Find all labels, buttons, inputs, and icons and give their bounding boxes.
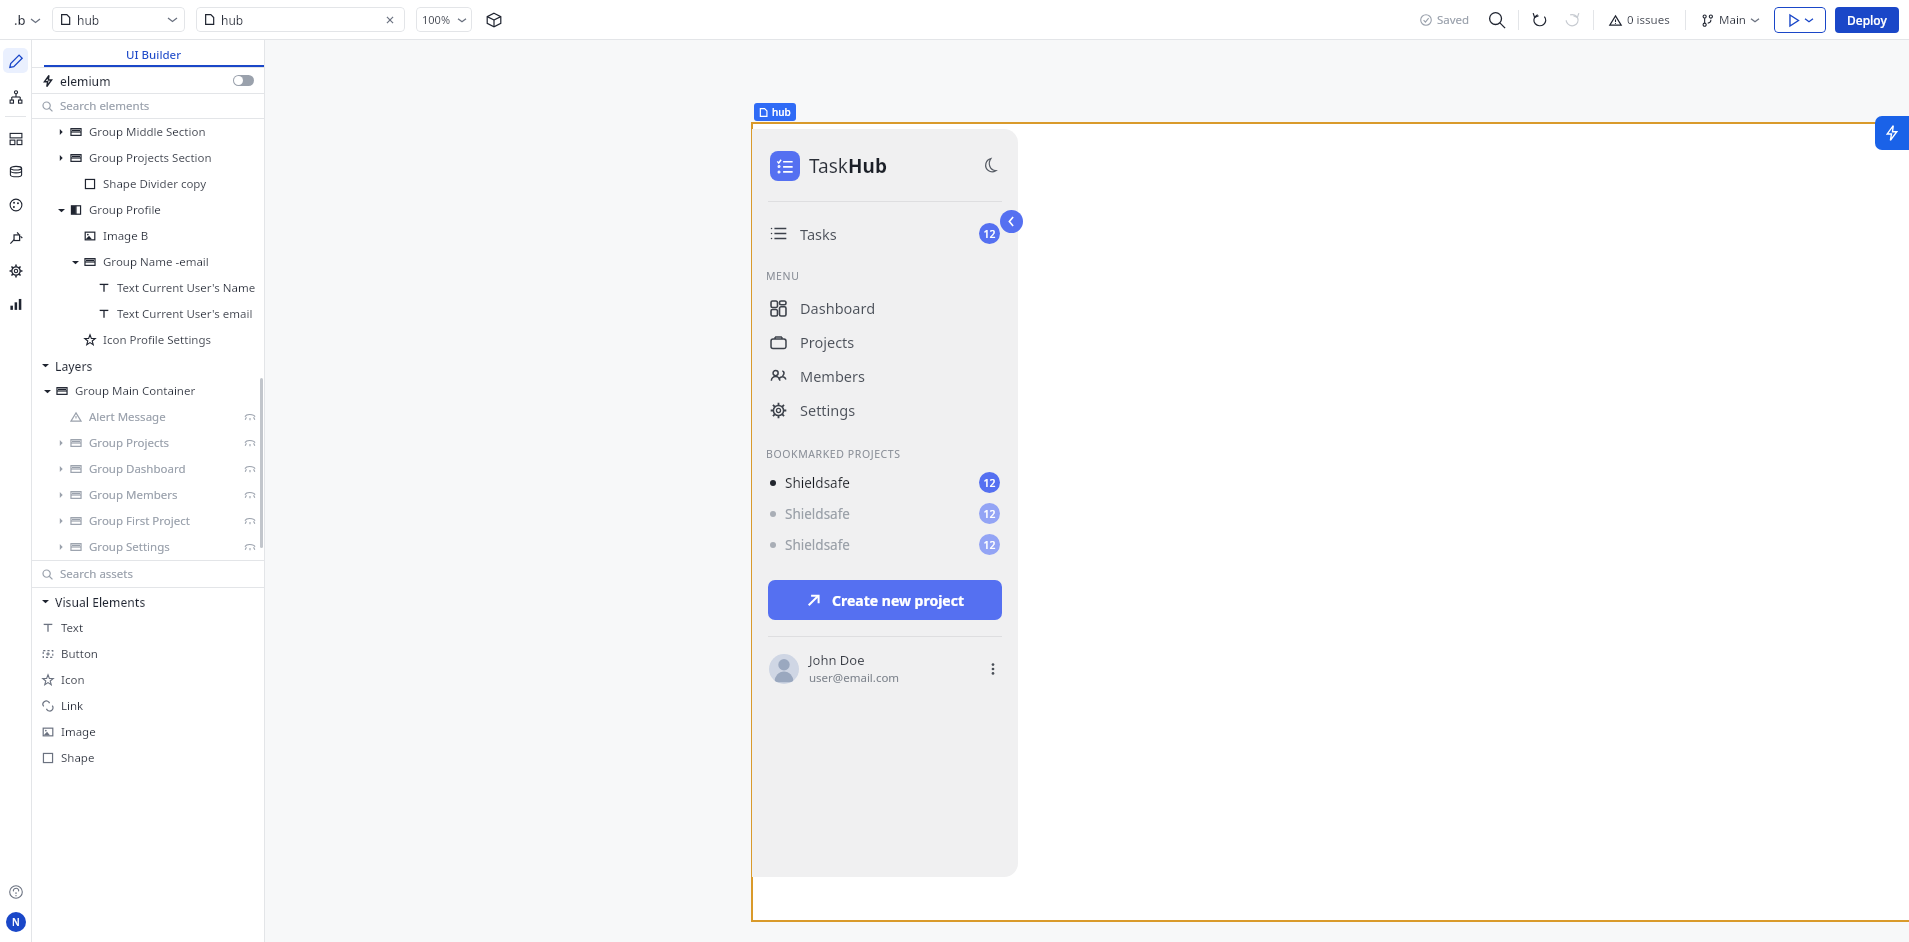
staticText: 100%: [422, 12, 451, 27]
button[interactable]: Link: [32, 693, 264, 719]
staticText: Group Main Container: [75, 383, 196, 399]
staticText: Text: [61, 620, 84, 636]
staticText: Group Projects: [89, 435, 170, 451]
staticText: Visual Elements: [55, 594, 146, 610]
button[interactable]: Account: [6, 912, 26, 932]
button[interactable]: Create new project: [768, 580, 1002, 620]
button[interactable]: hub: [196, 7, 405, 32]
button[interactable]: More options: [985, 661, 1001, 677]
button[interactable]: Group Middle Section: [32, 119, 264, 145]
button[interactable]: Group Profile: [32, 197, 264, 223]
button[interactable]: Icon: [32, 667, 264, 693]
button[interactable]: Group Name -email: [32, 249, 264, 275]
staticText: 12: [983, 476, 996, 490]
button[interactable]: Design: [3, 48, 28, 73]
button[interactable]: Icon Profile Settings: [32, 327, 264, 353]
button[interactable]: Undo: [1531, 11, 1549, 29]
button[interactable]: TaskHub logo: [770, 151, 800, 181]
button[interactable]: Toggle visibility: [244, 463, 256, 475]
button[interactable]: Shape Divider copy: [32, 171, 264, 197]
button[interactable]: Projects: [752, 325, 1018, 359]
staticText: hub: [77, 12, 100, 28]
button[interactable]: Dark mode: [981, 157, 1000, 176]
button[interactable]: 100%: [416, 7, 472, 32]
button[interactable]: Toggle visibility: [244, 541, 256, 553]
button[interactable]: Group Members: [32, 482, 264, 508]
button[interactable]: Shieldsafe: [752, 498, 1018, 529]
button[interactable]: Button: [32, 641, 264, 667]
button[interactable]: 0 issues: [1606, 12, 1673, 28]
staticText: Icon Profile Settings: [103, 332, 212, 348]
staticText: user@email.com: [809, 670, 900, 686]
staticText: UI Builder: [126, 47, 182, 63]
button[interactable]: Image B: [32, 223, 264, 249]
button[interactable]: Theme: [3, 192, 28, 217]
button[interactable]: Redo: [1563, 11, 1581, 29]
button[interactable]: 3D view: [484, 10, 504, 30]
button[interactable]: Components: [3, 126, 28, 151]
button[interactable]: Deploy: [1835, 7, 1899, 33]
button[interactable]: Collapse sidebar: [1000, 210, 1023, 233]
button[interactable]: hub: [754, 103, 796, 121]
staticText: Text Current User's Name: [117, 280, 256, 296]
staticText: Shieldsafe: [785, 474, 850, 492]
button[interactable]: Toggle visibility: [244, 515, 256, 527]
button[interactable]: Members: [752, 359, 1018, 393]
staticText: Shape Divider copy: [103, 176, 207, 192]
button[interactable]: Layers: [32, 353, 264, 378]
button[interactable]: Settings: [752, 393, 1018, 427]
button[interactable]: Shieldsafe: [752, 467, 1018, 498]
button[interactable]: Saved: [1416, 12, 1474, 28]
button[interactable]: Search: [1488, 11, 1506, 29]
staticText: Saved: [1437, 12, 1470, 28]
staticText: Settings: [800, 400, 856, 420]
button[interactable]: hub: [52, 7, 185, 32]
button[interactable]: Text: [32, 615, 264, 641]
button[interactable]: Integrations: [3, 225, 28, 250]
staticText: Group Profile: [89, 202, 161, 218]
staticText: Shieldsafe: [785, 505, 850, 523]
button[interactable]: elemium: [32, 68, 264, 93]
staticText: Group Dashboard: [89, 461, 186, 477]
staticText: Button: [61, 646, 98, 662]
button[interactable]: Toggle visibility: [244, 489, 256, 501]
staticText: Alert Message: [89, 409, 166, 425]
button[interactable]: Group Projects Section: [32, 145, 264, 171]
staticText: 12: [983, 227, 996, 241]
button[interactable]: Group Main Container: [32, 378, 264, 404]
button[interactable]: Shape: [32, 745, 264, 771]
button[interactable]: Settings: [3, 258, 28, 283]
button[interactable]: .b: [8, 11, 46, 29]
button[interactable]: Structure: [3, 84, 28, 109]
button[interactable]: Dashboard: [752, 291, 1018, 325]
button[interactable]: Toggle visibility: [244, 411, 256, 423]
staticText: Image: [61, 724, 96, 740]
button[interactable]: Text Current User's Name: [32, 275, 264, 301]
button[interactable]: Search assets: [32, 561, 264, 587]
staticText: Link: [61, 698, 84, 714]
staticText: John Doe: [809, 651, 865, 669]
staticText: Projects: [800, 332, 855, 352]
button[interactable]: Preview: [1774, 7, 1826, 33]
button[interactable]: Group Settings: [32, 534, 264, 560]
button[interactable]: Text Current User's email: [32, 301, 264, 327]
button[interactable]: Help: [3, 879, 28, 904]
button[interactable]: Group First Project: [32, 508, 264, 534]
button[interactable]: Search elements: [32, 94, 264, 118]
button[interactable]: Group Projects: [32, 430, 264, 456]
button[interactable]: Close tab: [383, 13, 397, 27]
button[interactable]: Analytics: [3, 291, 28, 316]
button[interactable]: Toggle visibility: [244, 437, 256, 449]
button[interactable]: Main: [1698, 12, 1762, 28]
button[interactable]: Group Dashboard: [32, 456, 264, 482]
button[interactable]: John Doe: [752, 651, 1018, 686]
button[interactable]: Image: [32, 719, 264, 745]
button[interactable]: Visual Elements: [32, 588, 264, 615]
button[interactable]: Data: [3, 159, 28, 184]
button[interactable]: Shieldsafe: [752, 529, 1018, 560]
button[interactable]: Tasks: [752, 219, 1018, 248]
button[interactable]: Alert Message: [32, 404, 264, 430]
button[interactable]: UI Builder: [124, 45, 184, 65]
button[interactable]: AI assistant: [1875, 116, 1909, 150]
staticText: Tasks: [800, 224, 837, 244]
